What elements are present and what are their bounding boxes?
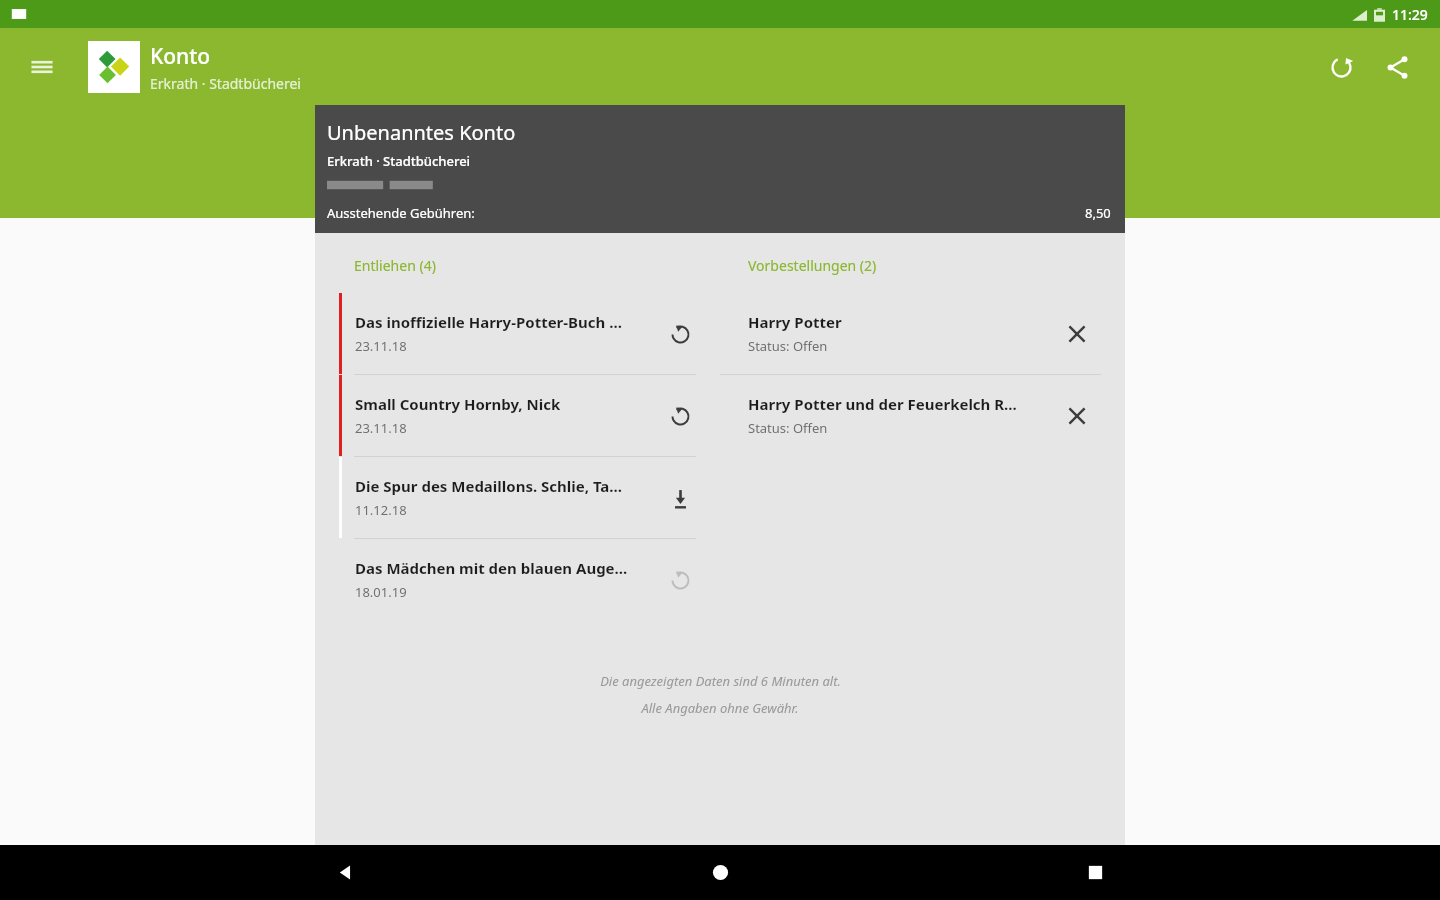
staticText: Alle Angaben ohne Gewähr. — [641, 699, 799, 717]
staticText: 23.11.18 — [355, 419, 407, 437]
staticText: 23.11.18 — [355, 337, 407, 355]
staticText: Das inoffizielle Harry-Potter-Buch ... — [355, 312, 622, 332]
button[interactable]: Aktualisieren — [1316, 42, 1366, 92]
staticText: Erkrath · Stadtbücherei — [327, 152, 471, 170]
button[interactable]: Vorbestellung stornieren — [1051, 308, 1103, 360]
staticText: Status: Offen — [748, 337, 828, 355]
button[interactable]: Small Country Hornby, Nick — [315, 375, 720, 456]
staticText: Ausstehende Gebühren: — [327, 204, 475, 222]
staticText: 18.01.19 — [355, 583, 407, 601]
staticText: Entliehen (4) — [354, 256, 436, 275]
button[interactable]: Zurück — [315, 845, 375, 900]
button[interactable]: Herunterladen — [654, 472, 706, 524]
button[interactable]: Die Spur des Medaillons. Schlie, Ta... — [315, 457, 720, 538]
button[interactable]: Harry Potter und der Feuerkelch R... — [720, 375, 1125, 456]
button[interactable]: Übersicht — [1065, 845, 1125, 900]
button[interactable]: Teilen — [1372, 42, 1422, 92]
staticText: Das Mädchen mit den blauen Auge... — [355, 558, 628, 578]
button[interactable]: Menü öffnen — [18, 43, 66, 91]
staticText: Die angezeigten Daten sind 6 Minuten alt… — [600, 672, 841, 690]
button[interactable]: Das Mädchen mit den blauen Auge... — [315, 539, 720, 620]
button[interactable]: Verlängern — [654, 390, 706, 442]
staticText: Harry Potter — [748, 312, 842, 332]
button[interactable]: Harry Potter — [720, 293, 1125, 374]
staticText: Vorbestellungen (2) — [748, 256, 877, 275]
button[interactable]: Verlängern — [654, 554, 706, 606]
staticText: Erkrath · Stadtbücherei — [150, 74, 301, 93]
staticText: Unbenanntes Konto — [327, 119, 516, 146]
button[interactable]: Startbildschirm — [690, 845, 750, 900]
button[interactable]: Vorbestellung stornieren — [1051, 390, 1103, 442]
staticText: 11:29 — [1392, 5, 1428, 24]
staticText: 11.12.18 — [355, 501, 407, 519]
staticText: Die Spur des Medaillons. Schlie, Ta... — [355, 476, 622, 496]
button[interactable]: Das inoffizielle Harry-Potter-Buch ... — [315, 293, 720, 374]
staticText: Status: Offen — [748, 419, 828, 437]
button[interactable]: Verlängern — [654, 308, 706, 360]
staticText: Small Country Hornby, Nick — [355, 394, 561, 414]
staticText: Harry Potter und der Feuerkelch R... — [748, 394, 1017, 414]
staticText: 8,50 — [1085, 204, 1111, 222]
staticText: Konto — [150, 42, 211, 71]
